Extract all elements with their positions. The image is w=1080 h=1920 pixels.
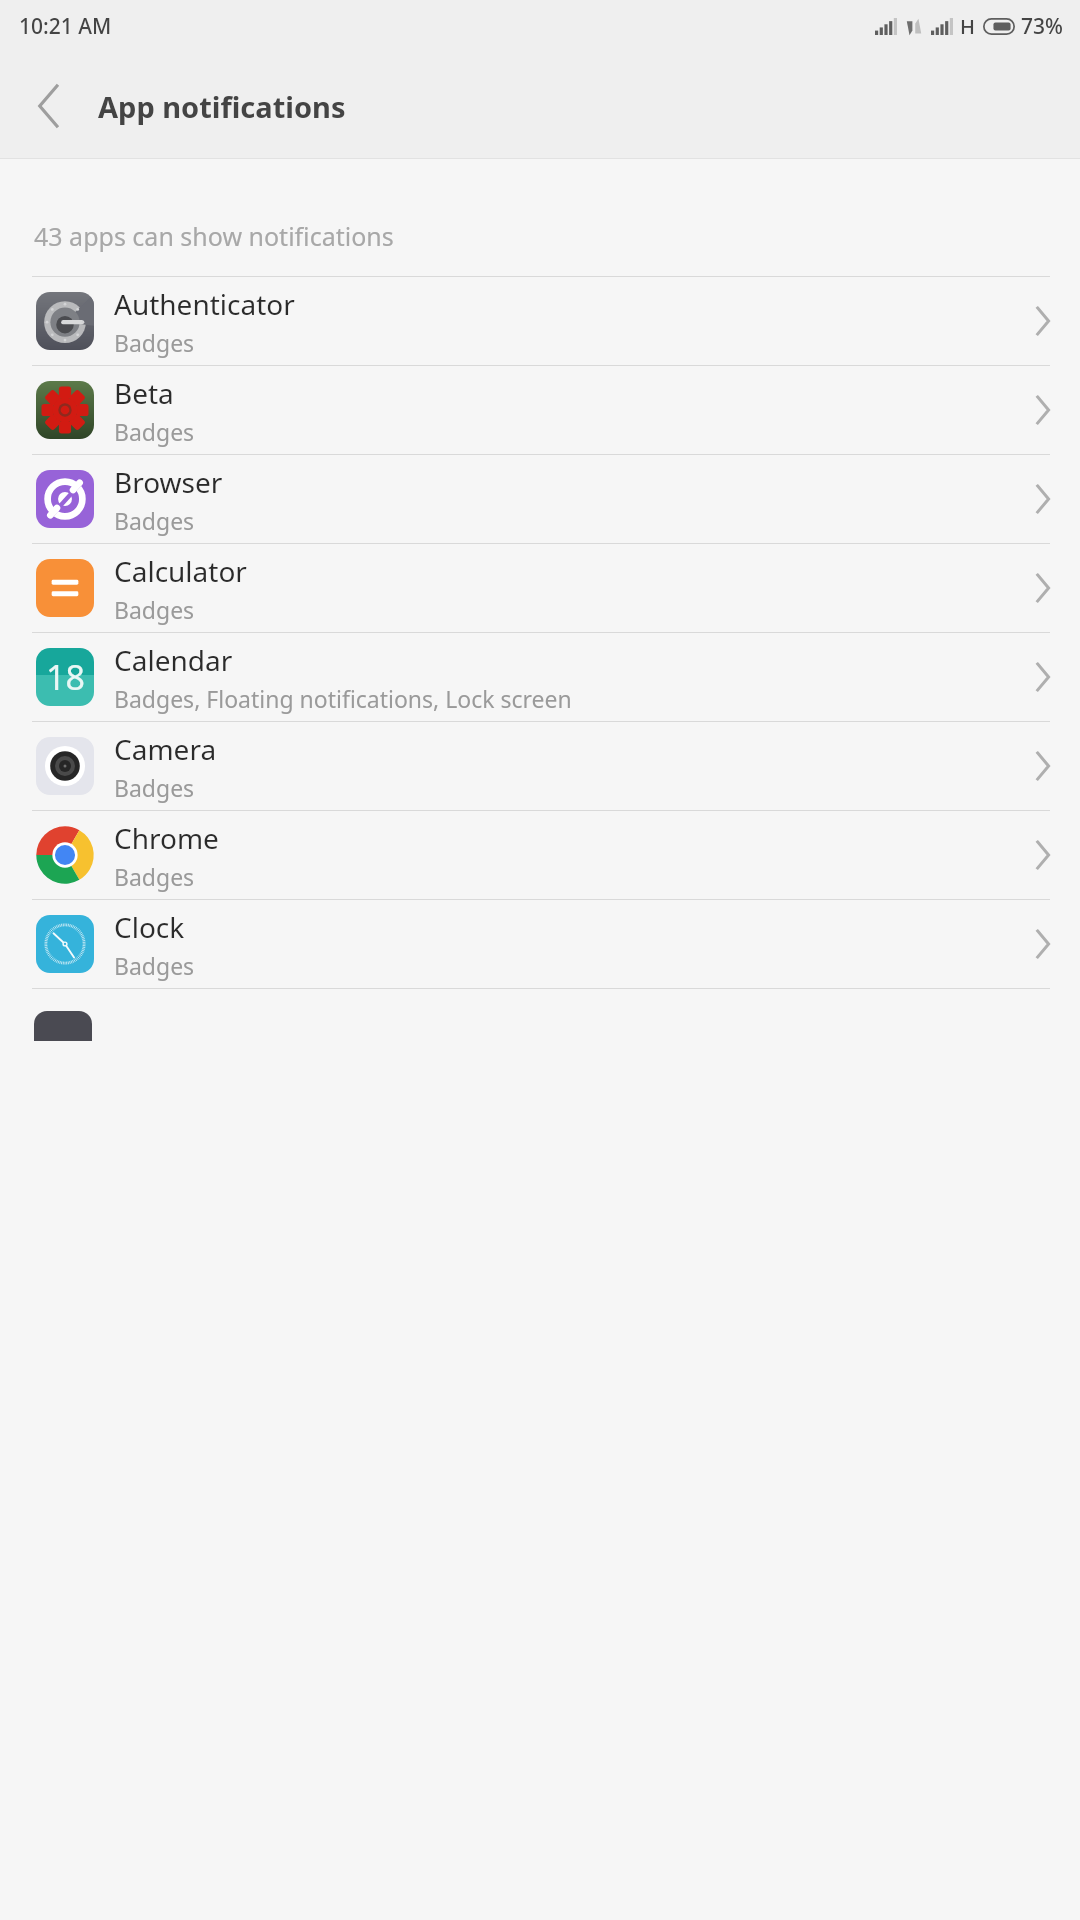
staticText: Badges — [114, 416, 195, 447]
staticText: Badges — [114, 950, 195, 981]
staticText: 43 apps can show notifications — [34, 219, 394, 253]
staticText: Browser — [114, 463, 223, 501]
button[interactable]: Camera — [0, 722, 1080, 810]
staticText: 18 — [46, 654, 85, 700]
staticText: H — [960, 13, 975, 40]
button[interactable]: Clock — [0, 900, 1080, 988]
staticText: Calendar — [114, 641, 233, 679]
staticText: Badges, Floating notifications, Lock scr… — [114, 683, 572, 714]
staticText: Badges — [114, 327, 195, 358]
staticText: App notifications — [98, 87, 346, 126]
staticText: Badges — [114, 772, 195, 803]
staticText: Chrome — [114, 819, 219, 857]
staticText: Badges — [114, 861, 195, 892]
button[interactable]: Back — [18, 75, 80, 137]
staticText: Authenticator — [114, 285, 295, 323]
staticText: 73% — [1021, 12, 1063, 41]
button[interactable]: 18 — [0, 633, 1080, 721]
button[interactable]: Browser — [0, 455, 1080, 543]
button[interactable]: Authenticator — [0, 277, 1080, 365]
button[interactable]: Beta — [0, 366, 1080, 454]
staticText: 10:21 AM — [19, 12, 112, 41]
staticText: Calculator — [114, 552, 247, 590]
staticText: Badges — [114, 505, 195, 536]
staticText: Badges — [114, 594, 195, 625]
button[interactable]: Chrome — [0, 811, 1080, 899]
staticText: Clock — [114, 908, 185, 946]
staticText: Beta — [114, 374, 174, 412]
staticText: Camera — [114, 730, 217, 768]
button[interactable]: Calculator — [0, 544, 1080, 632]
